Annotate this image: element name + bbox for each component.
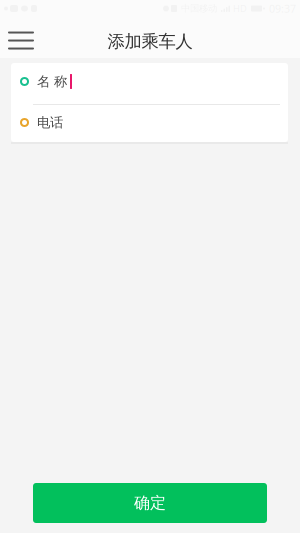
button[interactable]: 名 称 <box>11 63 288 104</box>
staticText: 名 称 <box>37 73 67 90</box>
staticText: 添加乘车人 <box>107 31 192 52</box>
staticText: 确定 <box>134 493 166 513</box>
button[interactable]: 电话 <box>11 105 288 142</box>
button[interactable]: 确定 <box>33 483 267 523</box>
staticText: 电话 <box>37 114 63 131</box>
button[interactable]: Menu <box>0 17 44 58</box>
